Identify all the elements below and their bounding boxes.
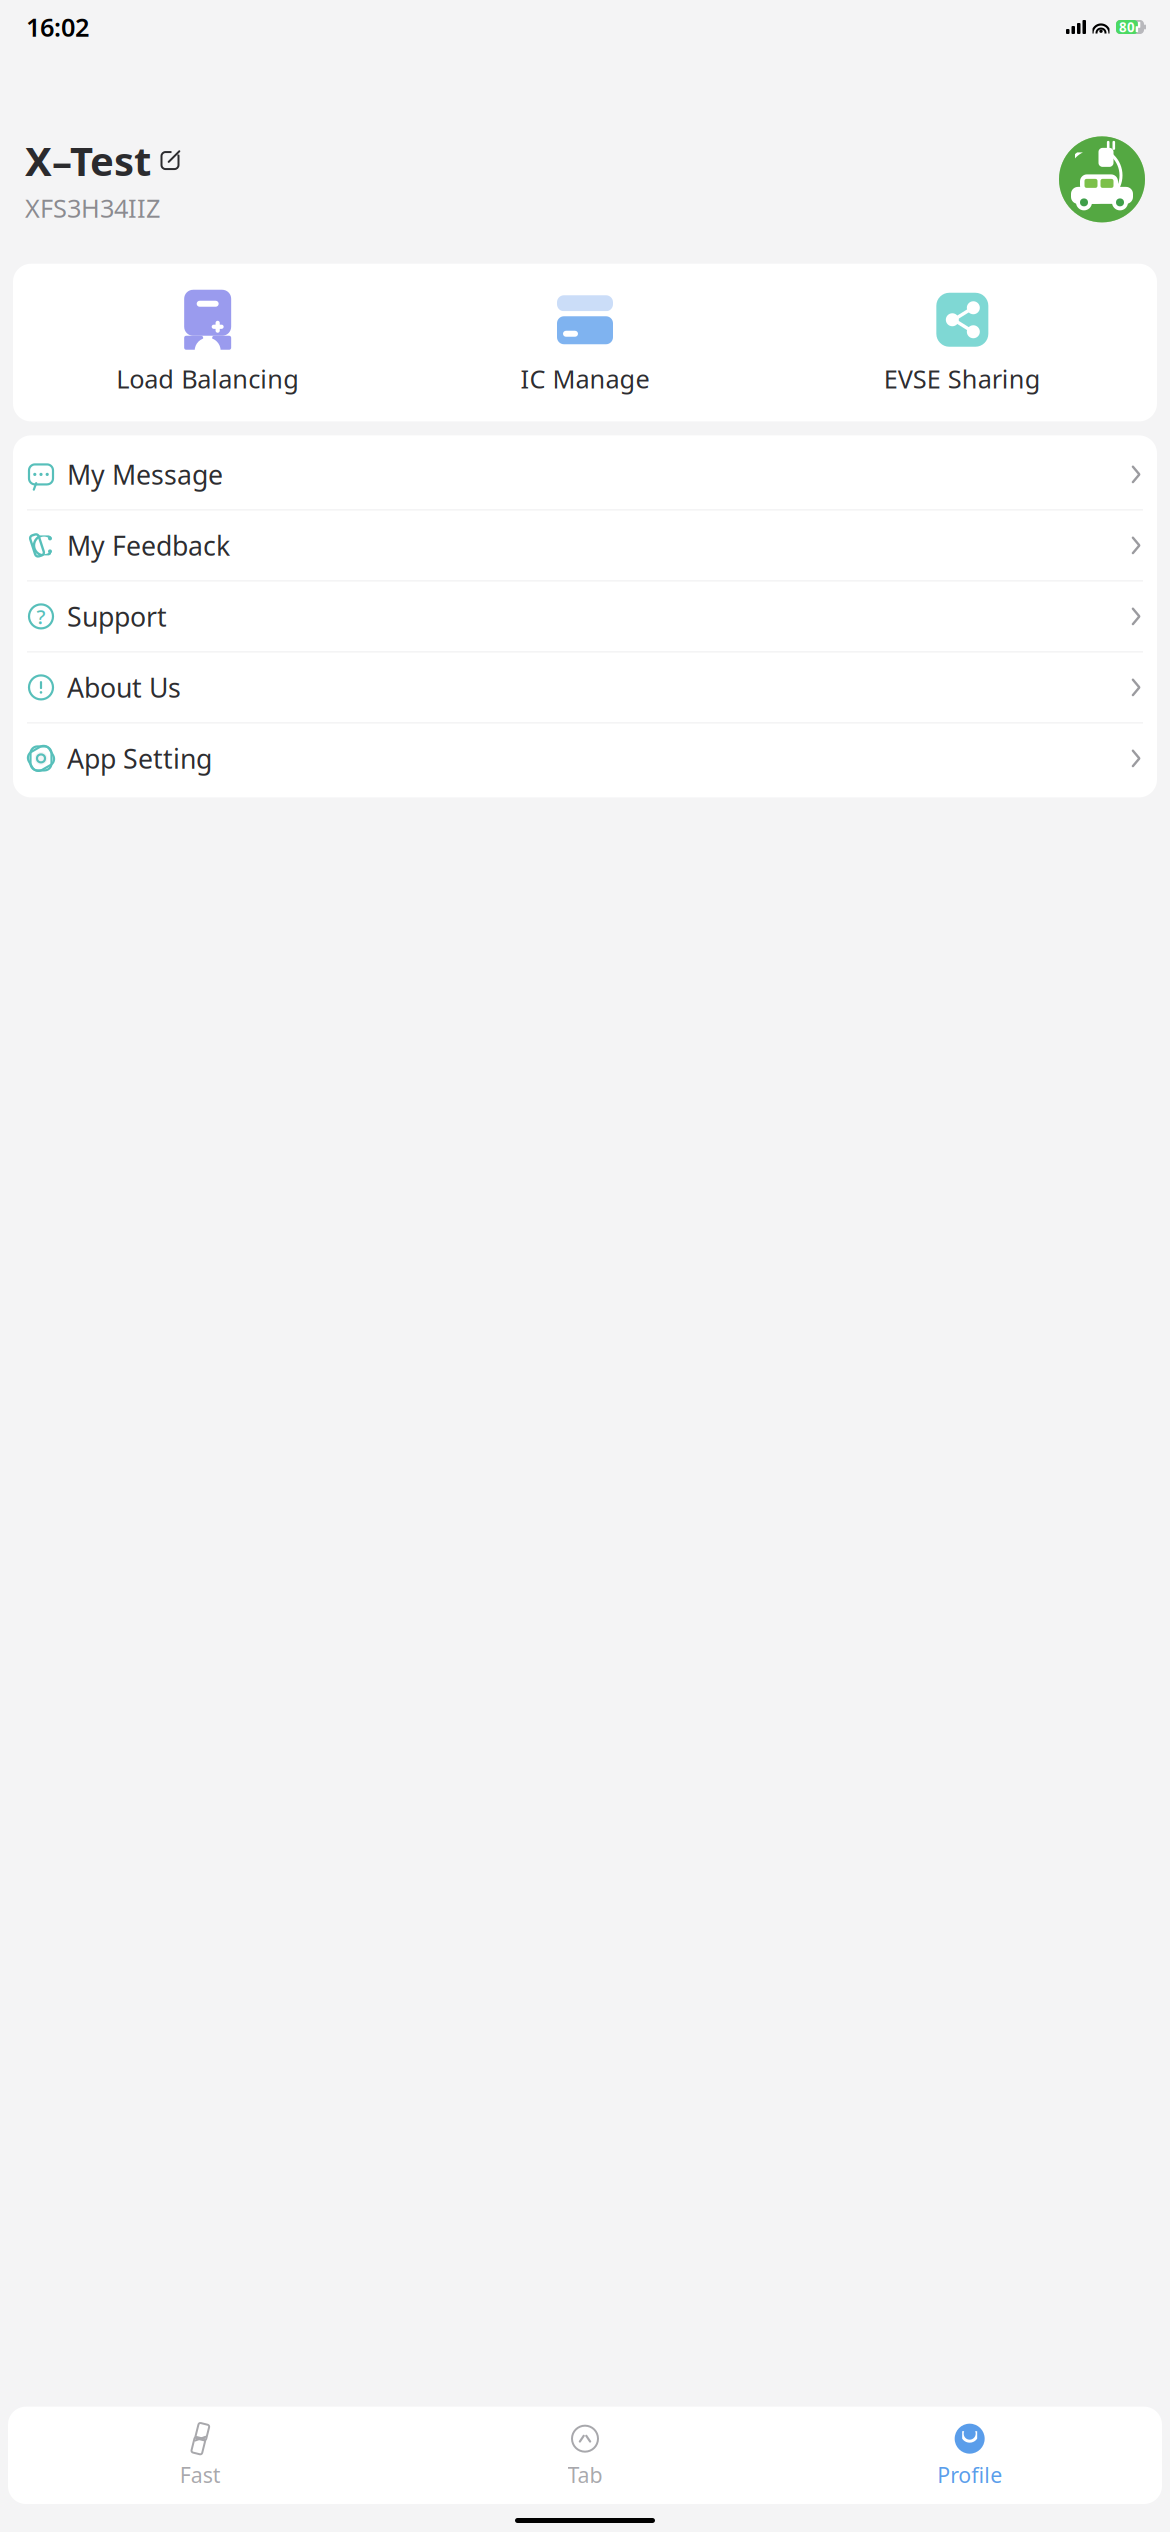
staticText: Load Balancing — [116, 362, 299, 395]
button[interactable]: My Feedback — [13, 510, 1157, 580]
button[interactable]: X–Test — [25, 134, 181, 187]
staticText: About Us — [67, 670, 181, 705]
button[interactable]: App Setting — [13, 723, 1157, 793]
staticText: Support — [67, 599, 167, 634]
button[interactable]: Profile — [777, 2414, 1162, 2497]
staticText: My Message — [67, 457, 223, 492]
staticText: Fast — [180, 2461, 221, 2489]
staticText: My Feedback — [67, 528, 230, 563]
staticText: 16:02 — [26, 10, 89, 44]
button[interactable]: Profile photo — [1059, 136, 1145, 222]
staticText: Profile — [937, 2461, 1002, 2489]
staticText: ? — [36, 603, 45, 630]
button[interactable]: IC Manage — [396, 284, 774, 401]
button[interactable]: Fast — [8, 2414, 393, 2497]
staticText: IC Manage — [520, 362, 649, 395]
staticText: App Setting — [67, 741, 212, 776]
button[interactable]: Load Balancing — [19, 284, 396, 401]
staticText: Tab — [567, 2461, 602, 2489]
button[interactable]: ? — [13, 581, 1157, 651]
staticText: 80 — [1119, 18, 1135, 36]
button[interactable]: About Us — [13, 652, 1157, 722]
staticText: EVSE Sharing — [884, 362, 1041, 395]
button[interactable]: My Message — [13, 439, 1157, 509]
staticText: X–Test — [25, 134, 151, 187]
button[interactable]: EVSE Sharing — [774, 284, 1151, 401]
button[interactable]: Tab — [393, 2414, 777, 2497]
staticText: XFS3H34IIZ — [25, 191, 160, 225]
